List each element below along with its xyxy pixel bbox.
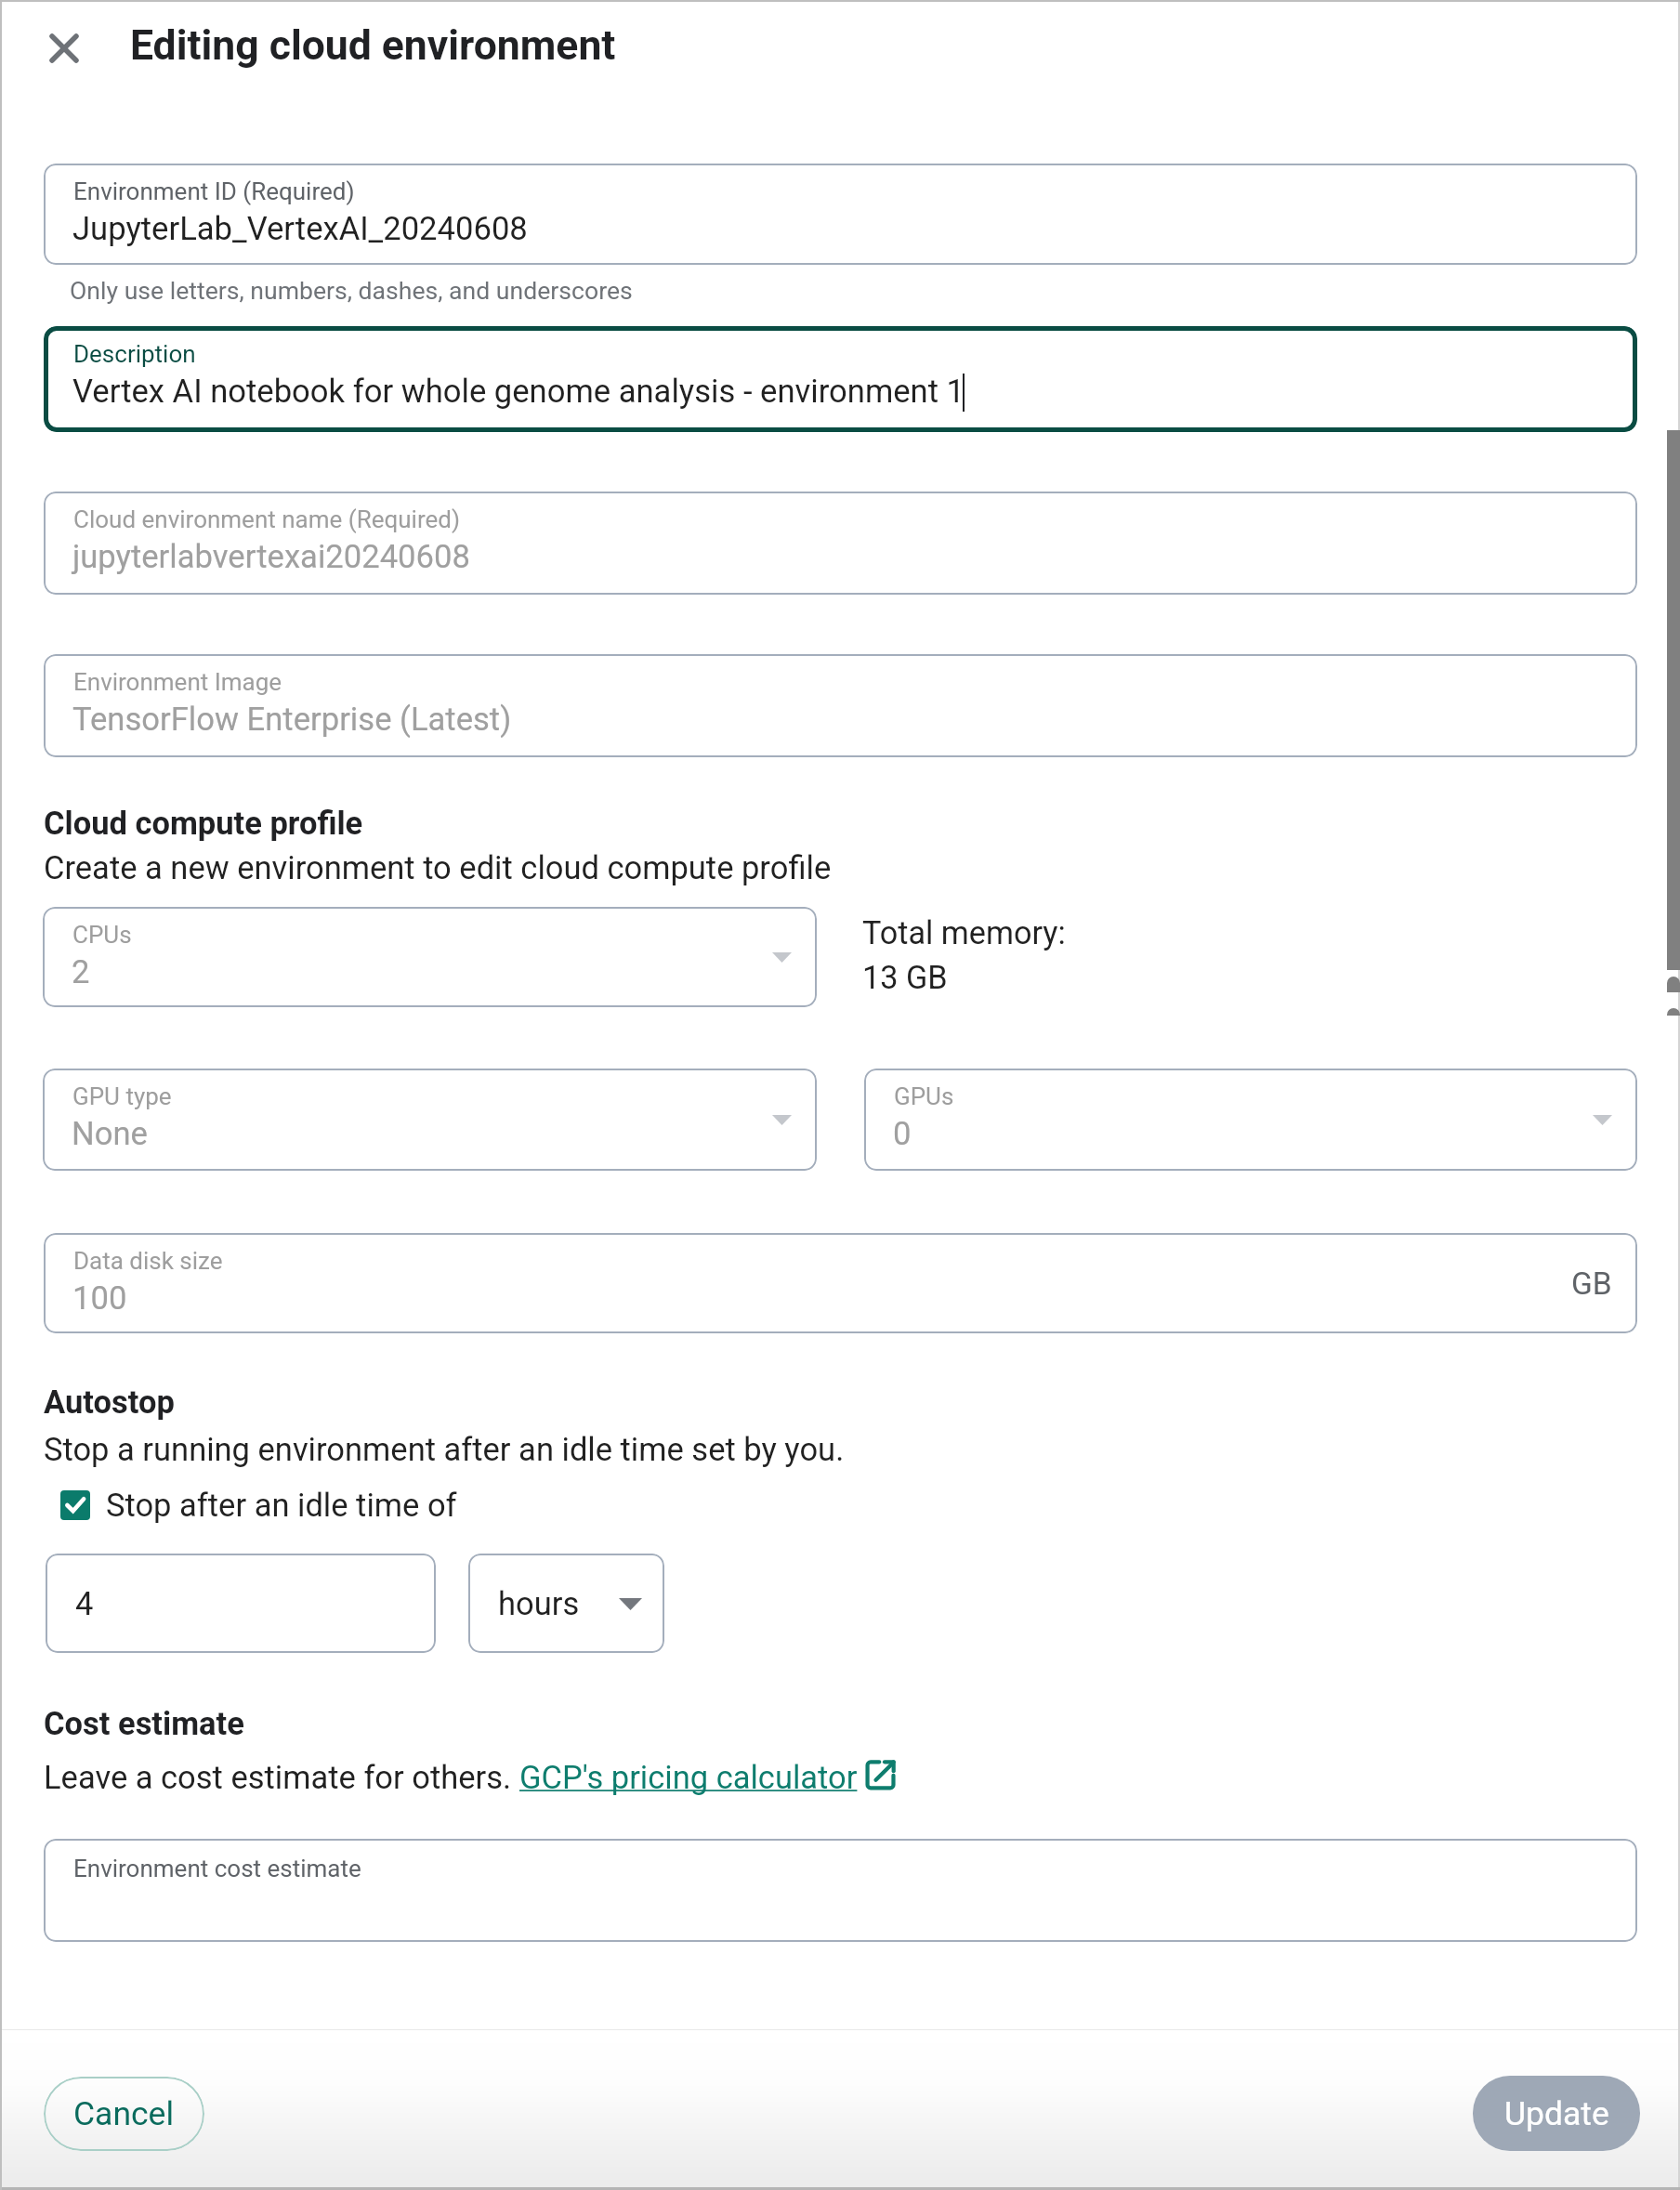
staticText: Cost estimate — [44, 1705, 244, 1742]
staticText: 2 — [72, 953, 90, 991]
staticText: Data disk size — [73, 1247, 223, 1275]
staticText: Environment ID (Required) — [73, 177, 355, 205]
button[interactable]: CPUs — [43, 907, 817, 1007]
staticText: Leave a cost estimate for others. — [44, 1759, 519, 1796]
staticText: Stop a running environment after an idle… — [44, 1431, 845, 1468]
staticText: Cloud environment name (Required) — [73, 505, 460, 533]
staticText: GPU type — [72, 1082, 172, 1110]
button[interactable]: Cloud environment name (Required) — [44, 492, 1637, 595]
button[interactable]: Data disk size — [44, 1233, 1637, 1333]
staticText: Stop after an idle time of — [106, 1487, 457, 1524]
staticText: hours — [498, 1585, 580, 1622]
staticText: JupyterLab_VertexAI_20240608 — [72, 210, 528, 248]
button[interactable]: Close — [37, 21, 91, 75]
staticText: Environment Image — [73, 668, 282, 696]
staticText: Cancel — [73, 2094, 175, 2133]
button[interactable]: Environment ID (Required) — [44, 164, 1637, 265]
button[interactable]: GCP's pricing calculator — [519, 1759, 858, 1796]
staticText: 4 — [75, 1585, 94, 1622]
staticText: Editing cloud environment — [130, 21, 616, 70]
button[interactable]: GPU type — [43, 1069, 817, 1171]
staticText: Description — [73, 340, 196, 368]
staticText: GPUs — [894, 1082, 954, 1110]
staticText: GB — [1571, 1265, 1612, 1302]
staticText: 13 GB — [862, 959, 948, 996]
staticText: Update — [1504, 2094, 1609, 2133]
staticText: Total memory: — [862, 914, 1066, 951]
staticText: Environment cost estimate — [73, 1855, 361, 1882]
staticText: Only use letters, numbers, dashes, and u… — [70, 276, 633, 305]
staticText: TensorFlow Enterprise (Latest) — [72, 701, 512, 739]
staticText: 100 — [72, 1279, 127, 1318]
staticText: Create a new environment to edit cloud c… — [44, 849, 832, 886]
button[interactable]: Open GCP pricing calculator — [863, 1758, 900, 1795]
button[interactable]: Environment Image — [44, 654, 1637, 757]
button[interactable]: 4 — [46, 1554, 436, 1653]
staticText: Autostop — [44, 1384, 175, 1421]
button[interactable]: Update — [1473, 2076, 1640, 2151]
staticText: jupyterlabvertexai20240608 — [72, 538, 470, 576]
staticText: Vertex AI notebook for whole genome anal… — [72, 373, 965, 411]
staticText: None — [72, 1115, 148, 1153]
button[interactable]: Cancel — [44, 2077, 204, 2151]
staticText: 0 — [893, 1115, 912, 1153]
button[interactable]: GPUs — [864, 1069, 1637, 1171]
button[interactable]: Stop after an idle time of — [60, 1487, 457, 1524]
button[interactable]: Environment cost estimate — [44, 1839, 1637, 1942]
button[interactable]: hours — [468, 1554, 664, 1653]
button[interactable]: Description — [44, 326, 1637, 432]
staticText: Cloud compute profile — [44, 805, 363, 842]
staticText: CPUs — [72, 921, 132, 949]
